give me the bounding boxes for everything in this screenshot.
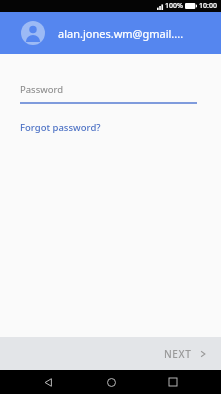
button[interactable]: Password xyxy=(20,83,197,104)
staticText: 100% xyxy=(165,1,183,11)
button[interactable]: Forgot password? xyxy=(20,119,101,136)
staticText: alan.jones.wm@gmail.... xyxy=(58,26,184,41)
staticText: NEXT xyxy=(164,347,192,361)
staticText: Password xyxy=(20,83,63,96)
button[interactable]: Home xyxy=(96,370,126,394)
staticText: Forgot password? xyxy=(20,121,101,134)
button[interactable]: Back xyxy=(33,370,63,394)
button[interactable]: Recent apps xyxy=(158,370,188,394)
button[interactable]: NEXT xyxy=(150,341,221,367)
button[interactable]: alan.jones.wm@gmail.... xyxy=(0,12,221,54)
staticText: 10:00 xyxy=(199,1,217,11)
